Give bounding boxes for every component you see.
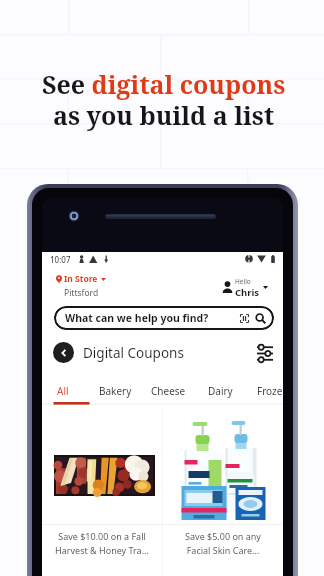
button[interactable]: What can we help you find? [54, 306, 274, 330]
staticText: Chris [235, 286, 260, 297]
staticText: Pittsford [64, 287, 99, 297]
staticText: Dairy [208, 384, 233, 398]
staticText: Save $10.00 on a Fall Harvest & Honey Tr… [55, 530, 149, 557]
staticText: All [57, 384, 69, 398]
button[interactable]: All [57, 375, 69, 407]
button[interactable]: Frozen [257, 375, 283, 407]
staticText: What can we help you find? [65, 311, 209, 325]
staticText: Digital Coupons [83, 344, 184, 362]
staticText: Cheese [151, 384, 186, 398]
staticText: Save $5.00 on any Facial Skin Care... [185, 530, 261, 557]
button[interactable]: In Store [56, 273, 106, 297]
button[interactable]: Save $5.00 on any Facial Skin Care... [162, 407, 283, 576]
button[interactable]: Hello [222, 273, 268, 297]
staticText: as you build a list [53, 98, 275, 132]
button[interactable]: Dairy [208, 375, 233, 407]
button[interactable]: Save $10.00 on a Fall Harvest & Honey Tr… [42, 407, 162, 576]
staticText: Hello [235, 277, 251, 286]
staticText: Frozen [257, 384, 283, 398]
staticText: Bakery [99, 384, 132, 398]
staticText: 10:07 [50, 254, 71, 265]
button[interactable]: Cheese [151, 375, 186, 407]
button[interactable]: Filter [256, 344, 274, 362]
button[interactable]: Back [53, 342, 74, 363]
staticText: In Store [64, 273, 98, 285]
staticText: See digital coupons [42, 67, 286, 101]
button[interactable]: Bakery [99, 375, 132, 407]
